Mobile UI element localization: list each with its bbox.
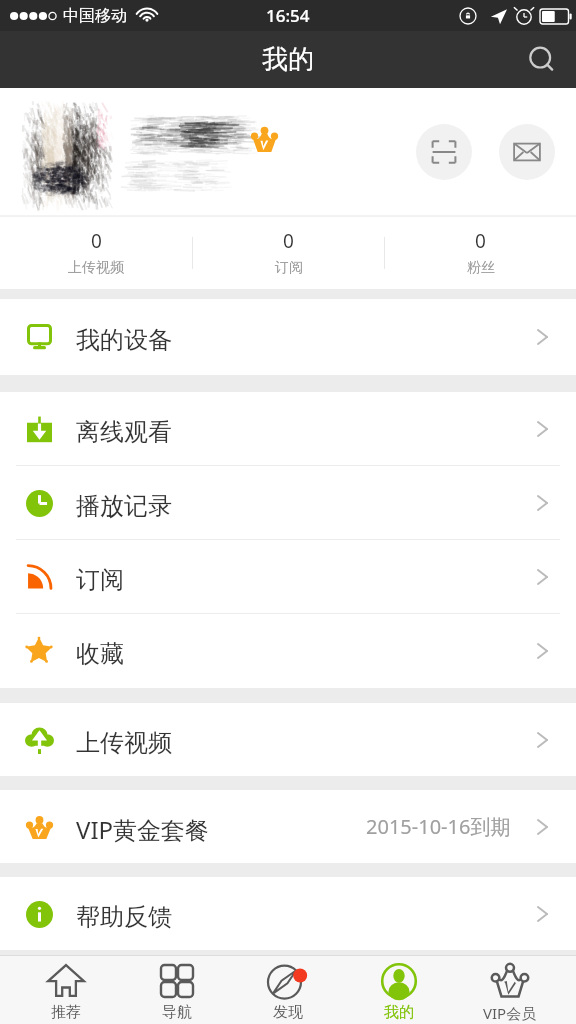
staticText: 中国移动 [63, 6, 127, 26]
button[interactable]: VIP黄金套餐 [0, 790, 576, 863]
button[interactable]: 0 [193, 216, 384, 289]
staticText: 播放记录 [76, 491, 172, 521]
staticText: 0 [91, 228, 102, 254]
staticText: 我的 [262, 43, 314, 76]
staticText: 上传视频 [68, 259, 124, 277]
button[interactable]: 订阅 [0, 540, 576, 614]
staticText: 粉丝 [467, 259, 495, 277]
button[interactable]: 离线观看 [0, 392, 576, 466]
staticText: 2015-10-16到期 [366, 813, 511, 840]
staticText: 导航 [162, 1003, 192, 1022]
staticText: 推荐 [51, 1003, 81, 1022]
staticText: 我的 [384, 1003, 414, 1022]
staticText: 0 [283, 228, 294, 254]
staticText: 我的设备 [76, 325, 172, 355]
button[interactable]: 上传视频 [0, 703, 576, 776]
button[interactable]: 帮助反馈 [0, 877, 576, 950]
button[interactable]: 导航 [121, 955, 232, 1024]
staticText: 上传视频 [76, 728, 172, 758]
staticText: 帮助反馈 [76, 902, 172, 932]
button[interactable]: 我的 [343, 955, 454, 1024]
button[interactable]: Messages [499, 124, 555, 180]
staticText: 发现 [273, 1003, 303, 1022]
button[interactable]: 0 [0, 216, 192, 289]
staticText: 收藏 [76, 639, 124, 669]
staticText: VIP会员 [483, 1003, 537, 1023]
button[interactable]: VIP会员 [454, 955, 565, 1024]
staticText: 订阅 [275, 259, 303, 277]
staticText: VIP黄金套餐 [76, 813, 210, 846]
button[interactable]: Search [520, 38, 564, 82]
button[interactable]: 推荐 [11, 955, 121, 1024]
button[interactable]: Scan QR code [416, 124, 472, 180]
button[interactable]: 收藏 [0, 614, 576, 688]
button[interactable]: 播放记录 [0, 466, 576, 540]
staticText: 订阅 [76, 565, 124, 595]
staticText: 16:54 [266, 4, 310, 27]
staticText: 离线观看 [76, 417, 172, 447]
button[interactable]: 我的设备 [0, 299, 576, 375]
button[interactable]: 发现 [232, 955, 343, 1024]
button[interactable]: 0 [385, 216, 576, 289]
staticText: 0 [475, 228, 486, 254]
